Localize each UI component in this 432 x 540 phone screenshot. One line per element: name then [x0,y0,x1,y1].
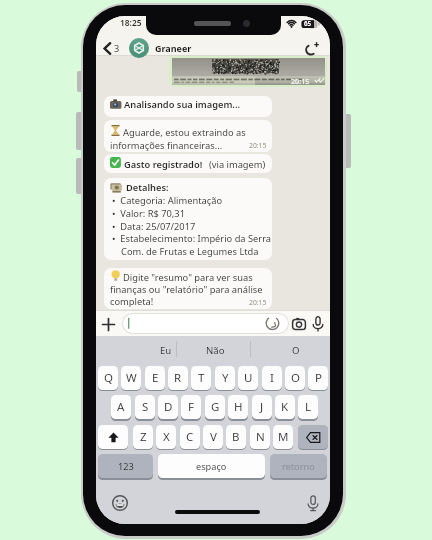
button[interactable]: C [180,425,200,449]
button[interactable]: Y [215,366,235,390]
button[interactable] [292,317,306,331]
staticText: A [117,399,125,415]
staticText: Gasto registrado! [124,158,203,171]
button[interactable]: H [228,395,248,419]
button[interactable]: O [285,366,305,390]
staticText: informações financeiras... [110,139,223,152]
staticText: Y [222,370,229,386]
staticText: Analisando sua imagem... [124,98,241,111]
staticText: O [292,344,300,357]
button[interactable]: Z [133,425,153,449]
staticText: 18:25 [120,17,142,28]
button[interactable]: L [298,395,318,419]
button[interactable] [298,425,328,449]
button[interactable] [122,313,289,334]
staticText: Com. de Frutas e Legumes Ltda [121,245,259,258]
button[interactable]: X [156,425,176,449]
staticText: S [142,399,149,415]
staticText: Digite "resumo" para ver suas [123,271,253,284]
button[interactable] [129,38,149,58]
button[interactable]: D [158,395,178,419]
staticText: D [164,399,173,415]
staticText: I [270,370,274,386]
staticText: F [188,399,194,415]
staticText: W [126,370,137,386]
staticText: • Valor: R$ 70,31 [112,207,185,220]
button[interactable]: R [168,366,188,390]
button[interactable]: K [275,395,295,419]
button[interactable]: S [135,395,155,419]
button[interactable]: W [121,366,141,390]
staticText: K [281,399,289,415]
staticText: • Data: 25/07/2017 [112,220,196,233]
staticText: Detalhes: [126,181,169,194]
staticText: Eu [160,344,172,357]
staticText: M [278,429,289,445]
button[interactable] [102,318,115,331]
button[interactable]: G [205,395,225,419]
button[interactable] [305,42,319,55]
staticText: (via imagem) [209,158,266,171]
staticText: Q [104,370,113,386]
button[interactable]: M [273,425,293,449]
staticText: 3 [114,42,120,55]
button[interactable]: J [252,395,272,419]
staticText: Z [140,429,147,445]
staticText: L [305,399,312,415]
button[interactable]: Q [98,366,118,390]
staticText: R [174,370,182,386]
staticText: V [210,429,217,445]
staticText: H [234,399,243,415]
button[interactable]: espaço [158,454,265,478]
button[interactable] [312,316,324,332]
staticText: 20:15 [249,298,267,307]
button[interactable]: retorno [270,454,327,478]
staticText: • Categoria: Alimentação [112,194,223,207]
staticText: Aguarde, estou extraindo as [123,126,246,139]
button[interactable]: N [250,425,270,449]
staticText: N [256,429,265,445]
staticText: • Estabelecimento: Império da Serra [112,232,272,245]
button[interactable]: V [203,425,223,449]
staticText: O [291,370,300,386]
staticText: J [260,399,264,415]
button[interactable] [177,337,250,361]
button[interactable]: B [226,425,246,449]
staticText: U [244,370,253,386]
button[interactable] [96,337,176,361]
staticText: espaço [196,460,227,473]
staticText: 20:15 [291,76,310,86]
staticText: G [211,399,220,415]
button[interactable] [307,495,319,512]
staticText: T [198,370,205,386]
button[interactable]: I [262,366,282,390]
button[interactable]: E [145,366,165,390]
staticText: P [315,370,322,386]
button[interactable]: P [308,366,328,390]
staticText: finanças ou "relatório" para análise [110,283,263,296]
staticText: 20:15 [249,141,267,150]
button[interactable] [251,337,330,361]
staticText: Graneer [155,42,192,54]
staticText: completa! [110,295,154,308]
staticText: E [152,370,159,386]
button[interactable] [112,495,128,511]
staticText: retorno [282,460,315,473]
button[interactable]: T [191,366,211,390]
button[interactable]: A [111,395,131,419]
button[interactable]: F [181,395,201,419]
staticText: 123 [118,460,134,473]
button[interactable] [98,425,128,449]
staticText: Não [206,344,225,357]
button[interactable]: U [238,366,258,390]
button[interactable] [103,42,112,55]
button[interactable]: 123 [98,454,153,478]
staticText: X [163,429,170,445]
staticText: 65 [304,19,312,27]
staticText: C [186,429,194,445]
staticText: B [232,429,240,445]
